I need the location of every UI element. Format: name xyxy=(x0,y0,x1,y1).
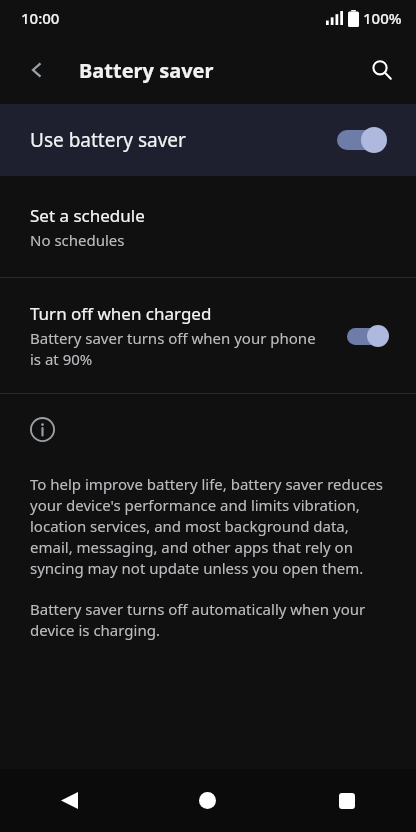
button[interactable]: Recent apps xyxy=(277,769,416,832)
button[interactable]: Turn off when charged xyxy=(0,278,416,393)
staticText: Battery saver xyxy=(79,57,214,84)
staticText: To help improve battery life, battery sa… xyxy=(30,474,386,579)
staticText: Battery saver turns off when your phone … xyxy=(30,328,329,370)
button[interactable]: Back xyxy=(0,769,138,832)
staticText: No schedules xyxy=(30,230,125,250)
button[interactable]: Home xyxy=(138,769,277,832)
button[interactable]: Toggle xyxy=(345,325,392,347)
button[interactable]: Use battery saver xyxy=(0,104,416,176)
button[interactable]: Set a schedule xyxy=(0,176,416,277)
button[interactable]: Search xyxy=(358,46,406,94)
staticText: 10:00 xyxy=(21,8,60,28)
staticText: Battery saver turns off automatically wh… xyxy=(30,599,386,641)
staticText: 100% xyxy=(363,8,402,28)
button[interactable]: Toggle xyxy=(335,127,392,153)
staticText: Set a schedule xyxy=(30,204,145,227)
button[interactable]: Back xyxy=(13,46,61,94)
staticText: Use battery saver xyxy=(30,127,335,153)
staticText: Turn off when charged xyxy=(30,302,212,325)
